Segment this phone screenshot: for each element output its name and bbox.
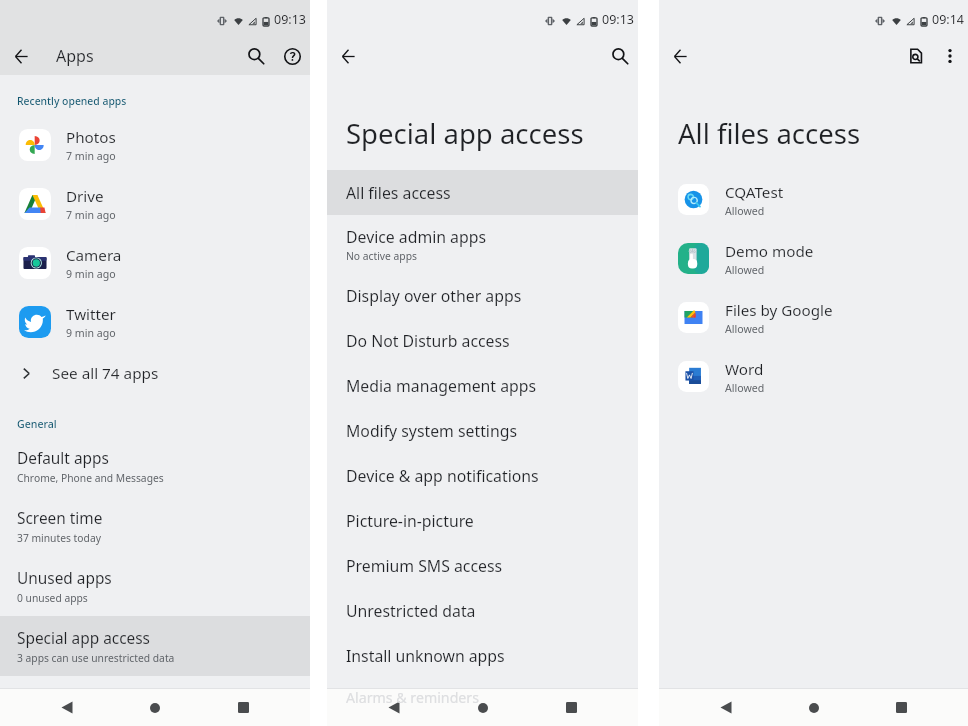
staticText: Screen time — [17, 508, 103, 529]
staticText: Recently opened apps — [17, 94, 127, 108]
button[interactable]: Default apps — [0, 436, 310, 496]
staticText: 7 min ago — [66, 149, 116, 163]
button[interactable]: Unrestricted data — [327, 588, 638, 633]
staticText: 3 apps can use unrestricted data — [17, 651, 175, 665]
button[interactable]: Twitter — [0, 292, 310, 351]
staticText: Alarms & reminders — [346, 688, 480, 707]
staticText: 09:13 — [602, 11, 634, 28]
staticText: 7 min ago — [66, 208, 116, 222]
staticText: Install unknown apps — [346, 645, 505, 667]
staticText: Twitter — [66, 304, 116, 325]
staticText: 9 min ago — [66, 326, 116, 340]
button[interactable]: Special app access — [0, 616, 310, 676]
staticText: General — [17, 417, 57, 431]
button[interactable]: Photos — [0, 115, 310, 174]
button[interactable]: Home — [134, 689, 176, 726]
staticText: Default apps — [17, 448, 109, 469]
staticText: 09:13 — [274, 11, 306, 28]
button[interactable]: Navigate up — [4, 39, 38, 73]
staticText: See all 74 apps — [52, 363, 159, 384]
button[interactable]: Premium SMS access — [327, 543, 638, 588]
button[interactable]: Help — [275, 39, 309, 73]
staticText: Media management apps — [346, 375, 536, 397]
button[interactable]: Device & app notifications — [327, 453, 638, 498]
staticText: Unused apps — [17, 568, 112, 589]
staticText: Drive — [66, 186, 104, 207]
button[interactable]: Files by Google — [659, 288, 968, 347]
button[interactable]: More options — [933, 39, 967, 73]
staticText: Device admin apps — [346, 226, 486, 248]
staticText: Special app access — [17, 628, 150, 649]
staticText: 0 unused apps — [17, 591, 88, 605]
staticText: Photos — [66, 127, 116, 148]
staticText: Special app access — [346, 115, 584, 152]
staticText: Modify system settings — [346, 420, 517, 442]
staticText: Display over other apps — [346, 285, 522, 307]
staticText: Allowed — [725, 381, 765, 395]
staticText: Demo mode — [725, 241, 814, 262]
button[interactable]: Search documents — [899, 39, 933, 73]
button[interactable]: See all 74 apps — [0, 351, 310, 395]
button[interactable]: Camera — [0, 233, 310, 292]
staticText: Allowed — [725, 322, 765, 336]
button[interactable]: Unused apps — [0, 556, 310, 616]
button[interactable]: Recent apps — [222, 689, 264, 726]
staticText: Camera — [66, 245, 122, 266]
button[interactable]: Home — [793, 689, 835, 726]
button[interactable]: Back — [46, 689, 88, 726]
staticText: All files access — [346, 182, 451, 204]
staticText: 37 minutes today — [17, 531, 101, 545]
button[interactable]: Back — [373, 689, 415, 726]
staticText: Picture-in-picture — [346, 510, 474, 532]
staticText: CQATest — [725, 182, 784, 203]
button[interactable]: Word — [659, 347, 968, 406]
button[interactable]: All files access — [327, 170, 638, 215]
button[interactable]: Drive — [0, 174, 310, 233]
staticText: Unrestricted data — [346, 600, 476, 622]
staticText: Chrome, Phone and Messages — [17, 471, 164, 485]
button[interactable]: Modify system settings — [327, 408, 638, 453]
staticText: Allowed — [725, 263, 765, 277]
button[interactable]: Search — [239, 39, 273, 73]
button[interactable]: Display over other apps — [327, 273, 638, 318]
button[interactable]: Search — [603, 39, 637, 73]
staticText: 09:14 — [932, 11, 964, 28]
staticText: Do Not Disturb access — [346, 330, 510, 352]
button[interactable]: Screen time — [0, 496, 310, 556]
button[interactable]: Recent apps — [880, 689, 922, 726]
button[interactable]: Install unknown apps — [327, 633, 638, 678]
button[interactable]: Do Not Disturb access — [327, 318, 638, 363]
button[interactable]: Picture-in-picture — [327, 498, 638, 543]
staticText: 9 min ago — [66, 267, 116, 281]
button[interactable]: Navigate up — [331, 39, 365, 73]
button[interactable]: Device admin apps — [327, 215, 638, 273]
staticText: Word — [725, 359, 764, 380]
staticText: Files by Google — [725, 300, 833, 321]
staticText: Apps — [56, 45, 94, 67]
button[interactable]: Media management apps — [327, 363, 638, 408]
staticText: Device & app notifications — [346, 465, 539, 487]
button[interactable]: CQATest — [659, 170, 968, 229]
button[interactable]: Back — [705, 689, 747, 726]
button[interactable]: Recent apps — [550, 689, 592, 726]
staticText: Premium SMS access — [346, 555, 503, 577]
button[interactable]: Navigate up — [663, 39, 697, 73]
staticText: Allowed — [725, 204, 765, 218]
button[interactable]: Demo mode — [659, 229, 968, 288]
staticText: No active apps — [346, 249, 417, 263]
button[interactable]: Home — [462, 689, 504, 726]
staticText: All files access — [678, 115, 861, 152]
